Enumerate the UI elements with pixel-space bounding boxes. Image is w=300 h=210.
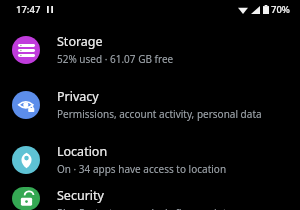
button[interactable]: Security [0,187,300,210]
button[interactable]: Location [0,132,300,187]
staticText: On · 34 apps have access to location [57,162,227,176]
staticText: 52% used · 61.07 GB free [57,52,174,66]
staticText: Permissions, account activity, personal … [57,107,262,121]
staticText: Play Protect, screen lock, fingerprint [57,206,227,210]
staticText: Location [57,143,108,160]
staticText: Storage [57,33,103,50]
button[interactable]: Privacy [0,77,300,132]
button[interactable]: Storage [0,22,300,77]
staticText: Privacy [57,88,99,105]
staticText: 17:47 [16,3,41,16]
staticText: Security [57,187,104,204]
staticText: 70% [271,3,290,16]
